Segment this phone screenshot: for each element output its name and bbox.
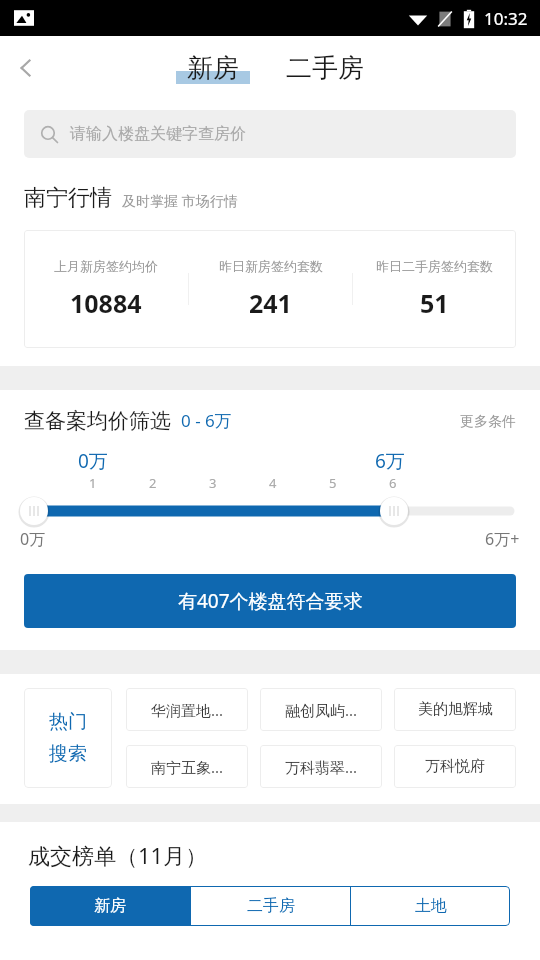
staticText: 6万+ — [485, 528, 520, 550]
staticText: 1 — [89, 474, 97, 492]
staticText: 二手房 — [247, 896, 295, 916]
staticText: 更多条件 — [460, 413, 516, 431]
staticText: 5 — [329, 474, 337, 492]
button[interactable]: 昨日新房签约套数 — [189, 230, 352, 348]
staticText: 10884 — [70, 286, 142, 320]
staticText: 2 — [149, 474, 157, 492]
button[interactable]: 二手房 — [286, 52, 364, 85]
button[interactable]: 请输入楼盘关键字查房价 — [24, 110, 516, 158]
button[interactable]: 融创凤屿... — [260, 688, 382, 731]
staticText: 美的旭辉城 — [418, 700, 493, 719]
button[interactable]: 万科悦府 — [394, 745, 516, 788]
staticText: 南宁五象... — [151, 757, 224, 777]
staticText: 万科翡翠... — [285, 757, 358, 777]
staticText: 搜索 — [49, 742, 87, 766]
button[interactable]: 二手房 — [191, 886, 350, 926]
button[interactable]: 新房 — [176, 52, 250, 85]
staticText: 0万 — [20, 528, 46, 550]
button[interactable]: Back — [0, 42, 52, 94]
staticText: 查备案均价筛选 — [24, 408, 171, 434]
staticText: 及时掌握 市场行情 — [122, 191, 238, 210]
staticText: 昨日二手房签约套数 — [376, 258, 493, 274]
staticText: 有407个楼盘符合要求 — [178, 588, 363, 614]
button[interactable]: 热门 — [24, 688, 112, 788]
staticText: 新房 — [94, 896, 126, 916]
staticText: 10:32 — [484, 7, 528, 30]
button[interactable]: 万科翡翠... — [260, 745, 382, 788]
button[interactable]: 华润置地... — [126, 688, 248, 731]
staticText: 6 — [389, 474, 397, 492]
staticText: 0 - 6万 — [181, 409, 232, 432]
staticText: 6万 — [375, 448, 405, 474]
staticText: 华润置地... — [151, 700, 224, 720]
staticText: 昨日新房签约套数 — [219, 258, 323, 274]
staticText: 土地 — [415, 896, 447, 916]
staticText: 241 — [249, 286, 292, 320]
staticText: 0万 — [78, 448, 108, 474]
button[interactable]: 土地 — [351, 886, 510, 926]
staticText: 成交榜单（11月） — [28, 840, 208, 870]
button[interactable]: Price range slider — [0, 496, 540, 526]
staticText: 4 — [269, 474, 277, 492]
button[interactable]: 新房 — [30, 886, 190, 926]
staticText: 新房 — [187, 52, 239, 85]
staticText: 南宁行情 — [24, 184, 112, 212]
staticText: 3 — [209, 474, 217, 492]
button[interactable]: 更多条件 — [460, 416, 516, 434]
staticText: 上月新房签约均价 — [54, 258, 158, 274]
button[interactable]: 美的旭辉城 — [394, 688, 516, 731]
staticText: 51 — [420, 286, 449, 320]
staticText: 请输入楼盘关键字查房价 — [70, 124, 246, 144]
button[interactable]: 南宁五象... — [126, 745, 248, 788]
staticText: 万科悦府 — [425, 757, 485, 776]
staticText: 热门 — [49, 710, 87, 734]
staticText: 融创凤屿... — [285, 700, 358, 720]
button[interactable]: 上月新房签约均价 — [24, 230, 188, 348]
staticText: 二手房 — [286, 52, 364, 85]
button[interactable]: 有407个楼盘符合要求 — [24, 574, 516, 628]
button[interactable]: 昨日二手房签约套数 — [353, 230, 516, 348]
